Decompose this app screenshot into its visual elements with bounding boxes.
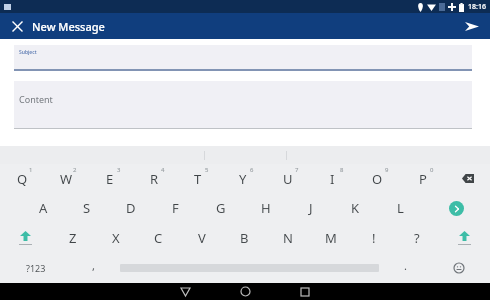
button[interactable]: Content (14, 81, 472, 128)
staticText: New Message (32, 19, 105, 34)
button[interactable]: Z (51, 223, 94, 253)
button[interactable]: ! (352, 223, 395, 253)
button[interactable]: W (44, 164, 88, 193)
button[interactable]: T (176, 164, 220, 193)
staticText: U (283, 170, 293, 188)
button[interactable]: . (383, 253, 428, 283)
staticText: . (404, 258, 407, 273)
staticText: 7 (295, 166, 299, 174)
button[interactable]: Recents (275, 283, 335, 300)
staticText: 1 (29, 166, 33, 174)
staticText: 3 (117, 166, 121, 174)
staticText: L (397, 199, 404, 217)
staticText: F (172, 199, 179, 217)
staticText: Content (19, 93, 53, 105)
staticText: T (194, 170, 202, 188)
staticText: , (92, 258, 95, 273)
staticText: 2 (73, 166, 77, 174)
staticText: C (154, 229, 163, 247)
staticText: Z (69, 229, 77, 247)
staticText: 5 (205, 166, 209, 174)
button[interactable]: F (153, 193, 198, 223)
staticText: X (112, 229, 120, 247)
button[interactable]: E (88, 164, 132, 193)
staticText: 6 (250, 166, 254, 174)
staticText: ?123 (26, 262, 46, 274)
button[interactable]: X (94, 223, 137, 253)
staticText: E (106, 170, 114, 188)
staticText: H (261, 199, 271, 217)
staticText: 0 (430, 166, 434, 174)
staticText: P (419, 170, 427, 188)
staticText: W (60, 170, 73, 188)
button[interactable]: S (65, 193, 109, 223)
button[interactable]: ? (395, 223, 438, 253)
staticText: B (240, 229, 249, 247)
button[interactable]: I (310, 164, 355, 193)
button[interactable]: Enter (423, 193, 490, 223)
staticText: J (309, 199, 313, 217)
staticText: S (83, 199, 91, 217)
button[interactable]: Back (155, 283, 215, 300)
staticText: ! (372, 229, 376, 247)
button[interactable]: C (137, 223, 180, 253)
button[interactable]: J (288, 193, 333, 223)
staticText: D (126, 199, 136, 217)
button[interactable]: Shift (438, 223, 490, 253)
staticText: Q (17, 170, 28, 188)
button[interactable]: H (243, 193, 288, 223)
button[interactable]: K (333, 193, 378, 223)
button[interactable]: D (109, 193, 153, 223)
staticText: M (325, 229, 337, 247)
staticText: V (198, 229, 206, 247)
button[interactable]: Send (462, 16, 482, 36)
button[interactable]: A (21, 193, 65, 223)
button[interactable]: Space (116, 253, 383, 283)
staticText: ? (414, 229, 420, 247)
button[interactable]: M (309, 223, 352, 253)
button[interactable]: , (71, 253, 116, 283)
button[interactable]: U (265, 164, 310, 193)
staticText: I (330, 170, 335, 188)
staticText: 8 (340, 166, 344, 174)
staticText: Y (239, 170, 247, 188)
button[interactable]: L (378, 193, 423, 223)
button[interactable]: O (355, 164, 400, 193)
button[interactable]: Backspace (445, 164, 490, 193)
button[interactable]: ?123 (0, 253, 71, 283)
staticText: K (351, 199, 360, 217)
button[interactable]: Emoji (428, 253, 490, 283)
staticText: O (372, 170, 383, 188)
button[interactable]: Subject (14, 45, 472, 69)
button[interactable]: P (400, 164, 445, 193)
button[interactable]: Q (0, 164, 44, 193)
staticText: 4 (161, 166, 165, 174)
button[interactable]: V (180, 223, 223, 253)
button[interactable]: Y (220, 164, 265, 193)
button[interactable]: B (223, 223, 266, 253)
staticText: R (150, 170, 159, 188)
button[interactable]: Close (8, 17, 26, 35)
staticText: N (283, 229, 293, 247)
button[interactable]: Home (215, 283, 275, 300)
button[interactable]: R (132, 164, 176, 193)
button[interactable]: Shift (0, 223, 51, 253)
button[interactable]: N (266, 223, 309, 253)
staticText: A (39, 199, 48, 217)
staticText: Subject (19, 49, 37, 56)
button[interactable]: G (198, 193, 243, 223)
staticText: G (216, 199, 226, 217)
staticText: 9 (385, 166, 389, 174)
staticText: 18:16 (468, 2, 486, 12)
